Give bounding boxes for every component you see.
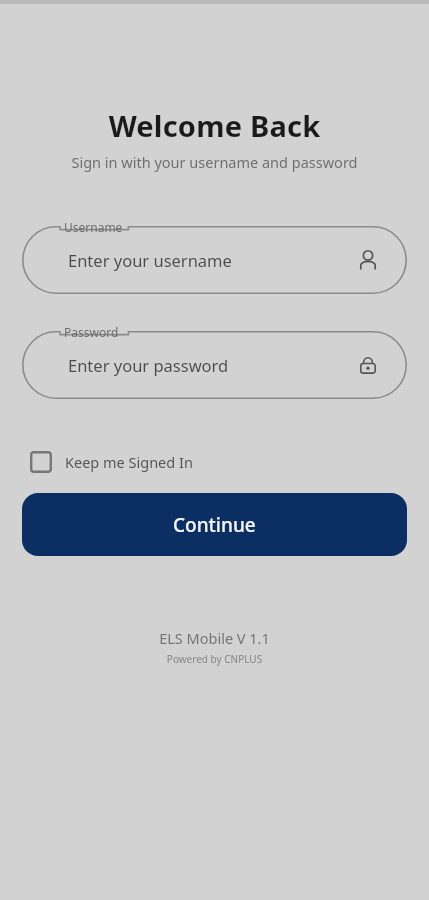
staticText: Powered by CNPLUS	[0, 652, 429, 666]
staticText: Sign in with your username and password	[0, 152, 429, 172]
staticText: Password	[64, 324, 119, 340]
button[interactable]: Keep me Signed In	[30, 447, 203, 477]
staticText: Username	[64, 219, 123, 235]
button[interactable]: Password	[353, 350, 383, 380]
staticText: Continue	[173, 512, 256, 538]
staticText: Enter your password	[68, 354, 353, 376]
button[interactable]: Continue	[22, 493, 407, 556]
staticText: Keep me Signed In	[65, 452, 193, 472]
staticText: Welcome Back	[0, 106, 429, 145]
staticText: ELS Mobile V 1.1	[0, 628, 429, 648]
button[interactable]: Username	[353, 245, 383, 275]
staticText: Enter your username	[68, 249, 353, 271]
